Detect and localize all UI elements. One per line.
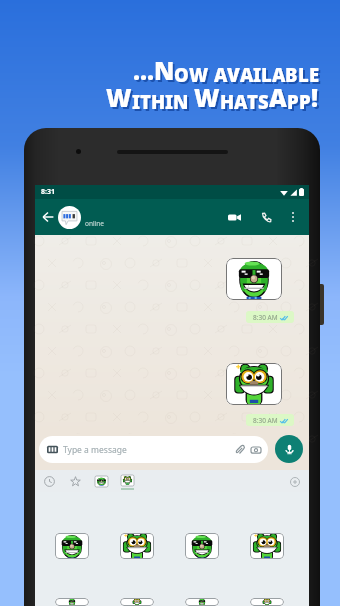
button[interactable]: Sticker pack 1 (94, 474, 109, 489)
staticText: W (191, 64, 210, 89)
staticText: 8:30 AM (253, 313, 278, 322)
button[interactable]: Sticker (250, 533, 284, 559)
staticText: W (196, 83, 222, 116)
staticText: P (299, 89, 311, 114)
staticText: V (229, 64, 242, 89)
staticText: A (240, 62, 253, 87)
staticText: H (220, 89, 234, 114)
staticText: A (234, 89, 247, 114)
staticText: H (222, 91, 236, 116)
button[interactable]: Sticker (185, 533, 219, 559)
button[interactable]: Contact avatar (58, 206, 81, 229)
staticText: T (247, 89, 258, 114)
button[interactable]: Sticker (250, 598, 284, 606)
staticText: L (300, 64, 311, 89)
staticText: ! (313, 83, 320, 116)
staticText: . (147, 54, 154, 87)
staticText: T (140, 89, 151, 114)
staticText: A (214, 62, 227, 87)
staticText: . (142, 56, 149, 89)
staticText: I (165, 89, 173, 114)
staticText: N (154, 54, 174, 87)
staticText: Type a message (63, 444, 127, 456)
button[interactable]: Sticker (226, 363, 282, 405)
staticText: A (269, 81, 287, 114)
staticText: I (255, 64, 263, 89)
button[interactable]: Add stickers (287, 474, 302, 489)
button[interactable]: Sticker pack 2 (120, 473, 135, 490)
button[interactable]: Sticker (185, 598, 219, 606)
staticText: W (108, 83, 134, 116)
staticText (208, 54, 214, 87)
staticText: A (274, 64, 287, 89)
staticText: S (260, 91, 271, 116)
staticText: B (285, 62, 298, 87)
staticText: 8:30 AM (253, 416, 278, 425)
staticText: T (142, 91, 153, 116)
staticText: N (156, 56, 176, 89)
staticText: O (174, 62, 189, 87)
staticText: A (236, 91, 249, 116)
staticText: . (140, 54, 147, 87)
staticText: W (106, 81, 132, 114)
staticText: S (258, 89, 269, 114)
staticText: P (301, 91, 313, 116)
staticText: . (133, 54, 140, 87)
staticText (188, 81, 194, 114)
staticText: T (249, 91, 260, 116)
staticText: V (227, 62, 240, 87)
staticText: P (287, 89, 299, 114)
button[interactable]: Sticker (120, 598, 154, 606)
staticText: N (175, 91, 190, 116)
staticText: L (263, 64, 274, 89)
button[interactable]: Video call (224, 207, 244, 227)
staticText (210, 56, 216, 89)
staticText: A (242, 64, 255, 89)
button[interactable]: Record voice message (275, 435, 303, 463)
staticText: I (132, 89, 140, 114)
staticText: L (298, 62, 309, 87)
staticText: A (272, 62, 285, 87)
button[interactable]: Type a message (39, 436, 268, 463)
button[interactable]: Sticker (226, 258, 282, 300)
staticText: H (151, 89, 165, 114)
staticText: W (189, 62, 208, 87)
staticText: 8:31 (41, 187, 55, 197)
button[interactable]: Back (39, 208, 57, 226)
staticText: W (194, 81, 220, 114)
staticText (190, 83, 196, 116)
button[interactable]: Favourites (68, 474, 83, 489)
staticText: A (216, 64, 229, 89)
button[interactable]: Recent (42, 474, 57, 489)
staticText: online (85, 219, 104, 228)
staticText: O (176, 64, 191, 89)
staticText: I (253, 62, 261, 87)
staticText: I (134, 91, 142, 116)
button[interactable]: Sticker (120, 533, 154, 559)
button[interactable]: More options (283, 207, 303, 227)
staticText: E (311, 64, 321, 89)
staticText: ! (311, 81, 318, 114)
staticText: E (309, 62, 319, 87)
staticText: B (287, 64, 300, 89)
staticText: A (271, 83, 289, 116)
staticText: . (135, 56, 142, 89)
staticText: . (149, 56, 156, 89)
staticText: N (173, 89, 188, 114)
button[interactable]: Sticker (55, 598, 89, 606)
staticText: P (289, 91, 301, 116)
staticText: H (153, 91, 167, 116)
staticText: L (261, 62, 272, 87)
button[interactable]: Sticker (55, 533, 89, 559)
staticText: I (167, 91, 175, 116)
button[interactable]: Voice call (256, 207, 276, 227)
